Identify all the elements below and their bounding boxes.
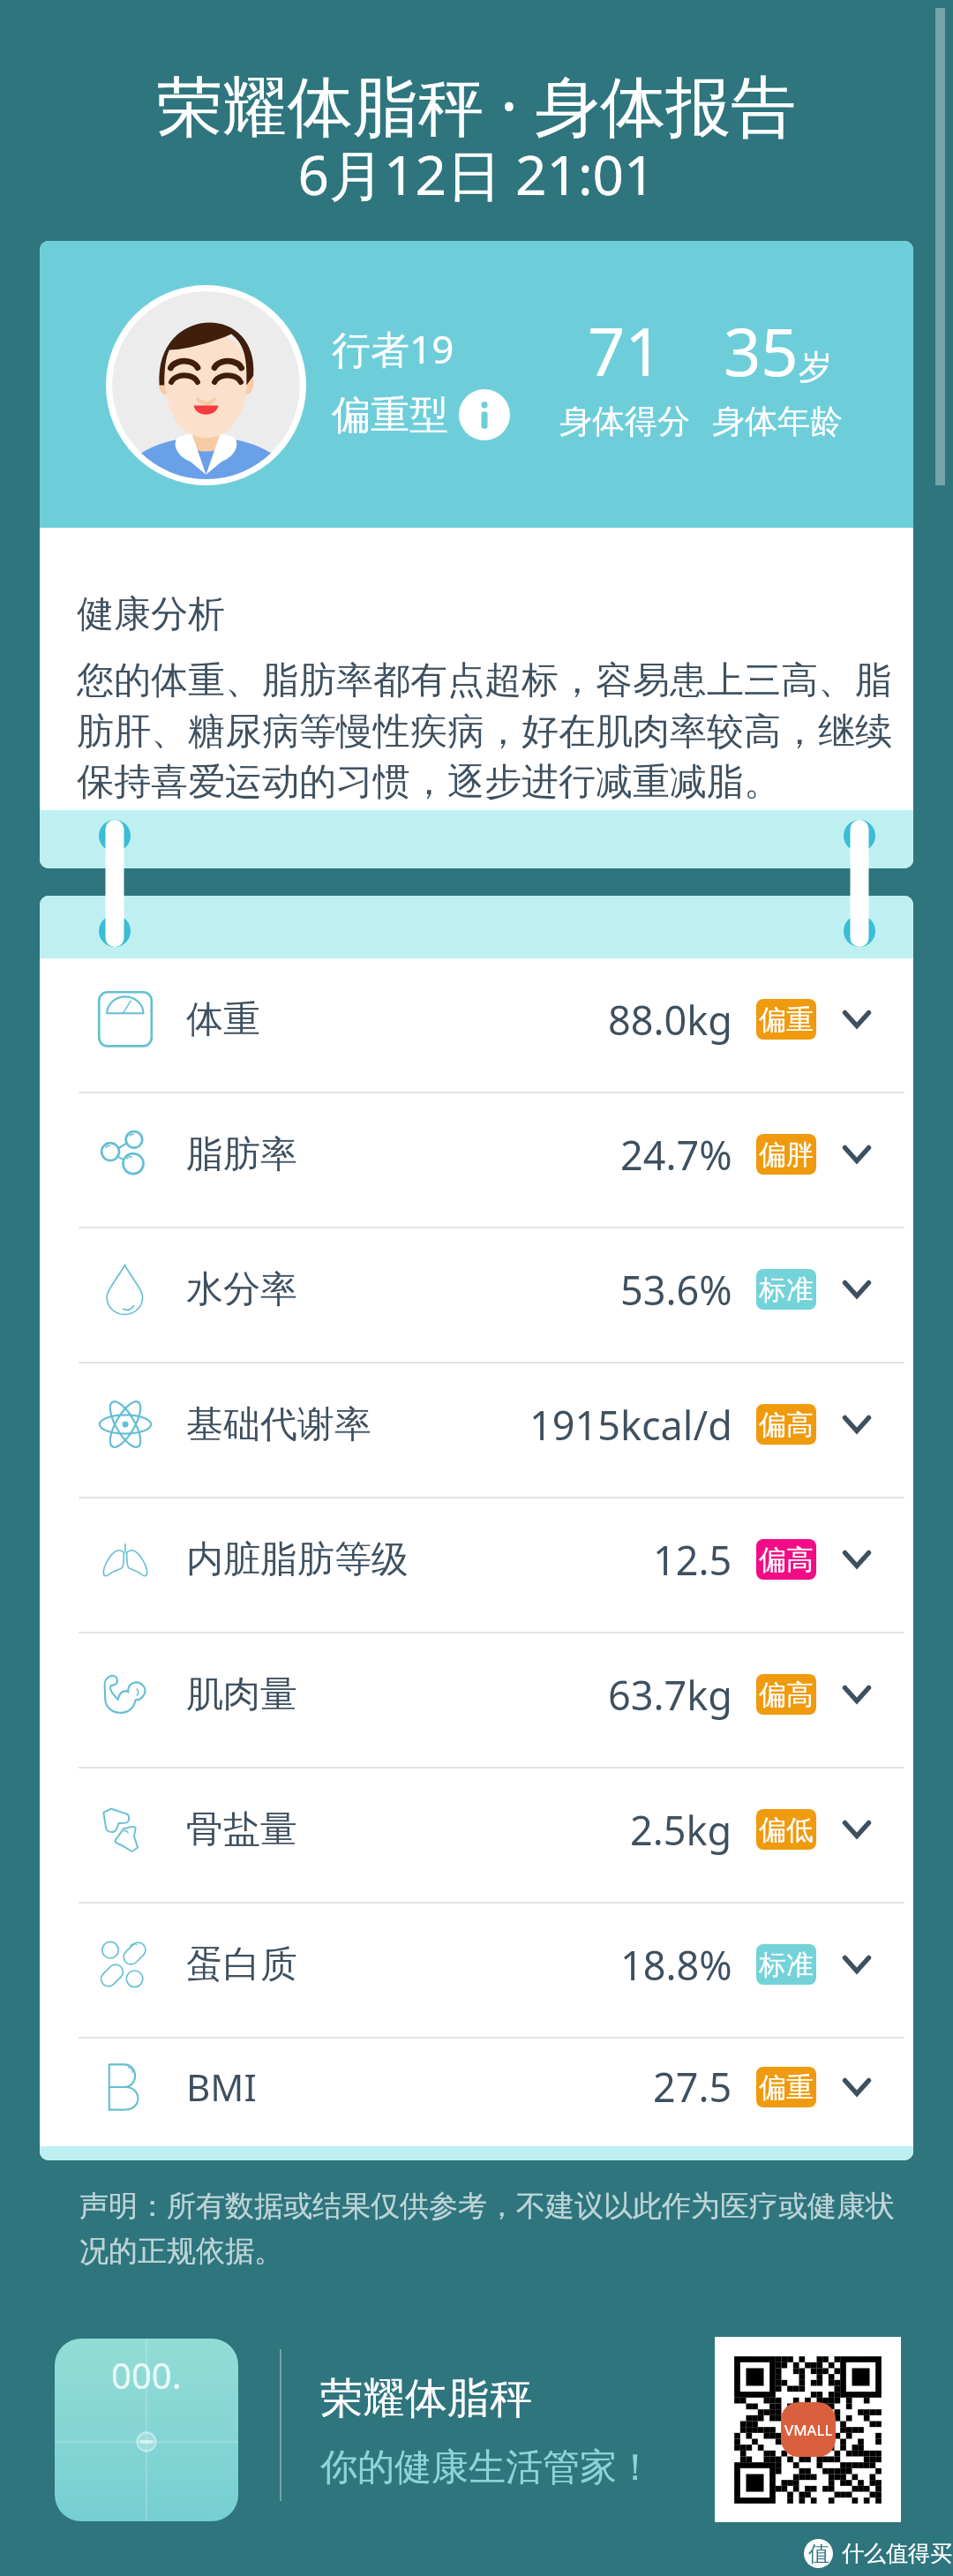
staticText: 偏高 — [759, 1678, 814, 1712]
staticText: 蛋白质 — [186, 1941, 297, 1988]
staticText: 偏高 — [759, 1408, 814, 1442]
staticText: 12.5 — [653, 1533, 732, 1587]
staticText: 身体年龄 — [712, 401, 843, 442]
button[interactable]: 蛋白质 — [40, 1904, 913, 2037]
staticText: 标准 — [759, 1948, 814, 1982]
staticText: 18.8% — [620, 1938, 732, 1992]
staticText: 6月12日 21:01 — [0, 137, 953, 212]
staticText: 偏胖 — [759, 1138, 814, 1172]
staticText: 基础代谢率 — [186, 1401, 371, 1448]
button[interactable]: 基础代谢率 — [40, 1363, 913, 1497]
staticText: 荣耀体脂秤 · 身体报告 — [0, 60, 953, 149]
staticText: 身体得分 — [559, 401, 690, 442]
staticText: 88.0kg — [608, 993, 732, 1047]
staticText: 内脏脂肪等级 — [186, 1536, 409, 1583]
staticText: 声明：所有数据或结果仅供参考，不建议以此作为医疗或健康状况的正规依据。 — [79, 2188, 896, 2270]
button[interactable]: BMI — [40, 2039, 913, 2146]
staticText: 值 — [808, 2541, 829, 2567]
button[interactable]: 体型说明 — [459, 389, 510, 440]
staticText: 71 — [588, 306, 663, 395]
staticText: 体重 — [186, 996, 260, 1043]
staticText: 偏重型 — [332, 391, 448, 439]
staticText: 行者19 — [332, 322, 454, 375]
staticText: 24.7% — [620, 1128, 732, 1182]
staticText: 骨盐量 — [186, 1806, 297, 1853]
staticText: 偏重 — [759, 2070, 814, 2105]
staticText: 000. — [111, 2351, 182, 2399]
staticText: 什么值得买 — [842, 2540, 952, 2567]
staticText: 偏重 — [759, 1003, 814, 1037]
staticText: 您的体重、脂肪率都有点超标，容易患上三高、脂肪肝、糖尿病等慢性疾病，好在肌肉率较… — [77, 657, 902, 805]
staticText: 27.5 — [653, 2060, 732, 2114]
staticText: 肌肉量 — [186, 1671, 297, 1718]
staticText: 63.7kg — [608, 1668, 732, 1722]
staticText: 35 — [724, 306, 799, 395]
staticText: 偏低 — [759, 1813, 814, 1847]
staticText: BMI — [186, 2062, 257, 2112]
staticText: 脂肪率 — [186, 1131, 297, 1178]
staticText: 荣耀体脂秤 — [320, 2372, 532, 2425]
staticText: 岁 — [799, 346, 832, 388]
button[interactable]: 内脏脂肪等级 — [40, 1498, 913, 1632]
button[interactable]: 肌肉量 — [40, 1633, 913, 1767]
staticText: 53.6% — [620, 1263, 732, 1317]
staticText: 水分率 — [186, 1266, 297, 1313]
staticText: 2.5kg — [630, 1803, 732, 1857]
staticText: 你的健康生活管家！ — [320, 2445, 654, 2491]
button[interactable]: 水分率 — [40, 1228, 913, 1362]
staticText: 标准 — [759, 1273, 814, 1307]
button[interactable]: 脂肪率 — [40, 1093, 913, 1227]
staticText: VMALL — [784, 2420, 833, 2440]
staticText: 健康分析 — [77, 591, 225, 638]
staticText: 偏高 — [759, 1543, 814, 1577]
button[interactable]: 体重 — [40, 958, 913, 1092]
button[interactable]: 骨盐量 — [40, 1769, 913, 1902]
staticText: 1915kcal/d — [529, 1398, 732, 1452]
